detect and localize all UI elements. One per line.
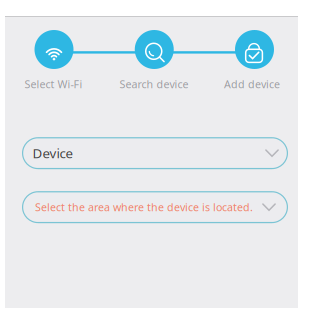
staticText: Add device — [224, 77, 280, 91]
staticText: Select Wi-Fi — [24, 77, 82, 91]
staticText: Search device — [119, 77, 188, 91]
staticText: Select the area where the device is loca… — [35, 200, 253, 214]
button[interactable]: Select the area where the device is loca… — [22, 191, 288, 223]
staticText: Device — [32, 144, 73, 162]
button[interactable]: Device — [22, 137, 288, 169]
